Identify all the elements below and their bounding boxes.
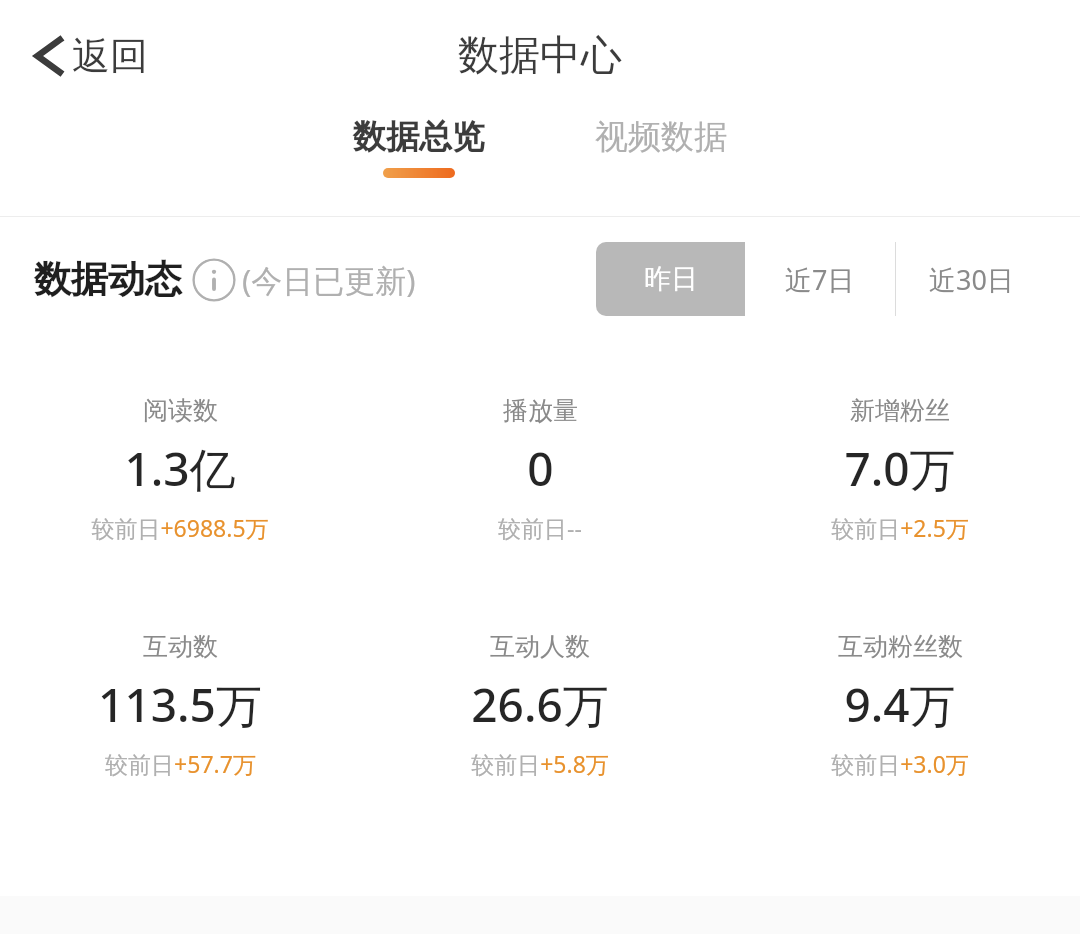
staticText: 播放量 [503, 395, 578, 426]
staticText: 较前日+6988.5万 [91, 512, 269, 543]
staticText: 数据中心 [458, 30, 622, 82]
button[interactable]: 昨日 [596, 242, 745, 316]
button[interactable]: 互动人数 [360, 631, 720, 779]
button[interactable]: 阅读数 [0, 395, 360, 543]
staticText: 数据动态 [34, 256, 182, 303]
staticText: 9.4万 [844, 673, 956, 736]
staticText: 较前日+3.0万 [831, 748, 969, 779]
staticText: 近7日 [785, 261, 855, 298]
staticText: 较前日+57.7万 [105, 748, 256, 779]
staticText: 互动数 [143, 631, 218, 662]
staticText: 较前日+2.5万 [831, 512, 969, 543]
staticText: 互动人数 [490, 631, 590, 662]
staticText: 1.3亿 [124, 437, 236, 500]
staticText: 数据总览 [353, 116, 485, 158]
staticText: 新增粉丝 [850, 395, 950, 426]
button[interactable]: 播放量 [360, 395, 720, 543]
button[interactable]: 近30日 [896, 242, 1046, 316]
staticText: 阅读数 [143, 395, 218, 426]
staticText: 较前日+5.8万 [471, 748, 609, 779]
staticText: 113.5万 [98, 673, 262, 736]
button[interactable]: 视频数据 [575, 112, 747, 162]
button[interactable]: 近7日 [745, 242, 895, 316]
button[interactable]: 数据总览 [333, 112, 505, 182]
staticText: 互动粉丝数 [838, 631, 963, 662]
staticText: 返回 [72, 32, 148, 80]
staticText: 0 [527, 437, 554, 500]
staticText: 较前日-- [498, 512, 582, 543]
staticText: 视频数据 [595, 116, 727, 158]
button[interactable]: 新增粉丝 [720, 395, 1080, 543]
button[interactable]: 返回 [26, 26, 154, 86]
button[interactable]: 互动数 [0, 631, 360, 779]
staticText: 26.6万 [471, 673, 609, 736]
button[interactable]: 互动粉丝数 [720, 631, 1080, 779]
staticText: 7.0万 [844, 437, 956, 500]
staticText: 昨日 [644, 262, 698, 296]
button[interactable]: 说明 [192, 258, 236, 302]
staticText: (今日已更新) [242, 259, 416, 301]
staticText: 近30日 [929, 261, 1014, 298]
